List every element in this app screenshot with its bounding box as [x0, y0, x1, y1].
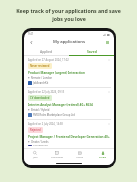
staticText: 9:41 [28, 32, 34, 36]
staticText: CV downloaded [30, 96, 50, 100]
button[interactable]: Applied [24, 47, 69, 55]
staticText: Profile [99, 156, 107, 159]
button[interactable]: Saved [69, 47, 114, 55]
staticText: Bristol / Hybrid [31, 108, 50, 112]
staticText: Applied on 22 July 2024, 09:15 [28, 90, 65, 94]
staticText: Project Manager / Frontend Developer Gen… [28, 135, 110, 139]
button[interactable]: Menu [103, 38, 111, 46]
staticText: GO EMPLOY [33, 145, 48, 146]
button[interactable]: Profile [91, 149, 114, 161]
staticText: Companies [51, 156, 64, 159]
staticText: Onsite / Leeds [31, 140, 49, 144]
button[interactable]: Advice [68, 149, 91, 161]
staticText: Interim Analyst Manager (retired) 40+ 86… [28, 103, 93, 107]
button[interactable]: Companies [46, 149, 68, 161]
staticText: Jobs [33, 156, 38, 159]
staticText: Never reviewed [30, 64, 50, 68]
staticText: Saved [87, 49, 97, 54]
staticText: Product Manager (urgent) Interaction [28, 71, 85, 75]
staticText: Keep track of your applications and save [16, 7, 121, 14]
button[interactable]: Jobs [24, 149, 46, 161]
button[interactable]: Back [27, 38, 35, 46]
staticText: Rejected [30, 128, 41, 132]
button[interactable]: Applied on 2 July 2024, 14:58 [24, 120, 114, 148]
staticText: Advice [76, 156, 84, 159]
staticText: JobSearchKit [33, 81, 49, 85]
staticText: PMO Roles Marketplace Group Ltd [33, 113, 75, 117]
staticText: Applied on 27 August 2024, 17:02 [28, 58, 69, 62]
staticText: Remote / London [31, 76, 53, 80]
staticText: My applications [53, 39, 86, 45]
staticText: jobs you love [52, 15, 86, 22]
staticText: Applied on 2 July 2024, 14:58 [28, 122, 63, 126]
button[interactable]: Applied on 27 August 2024, 17:02 [24, 56, 114, 87]
staticText: Applied [40, 49, 53, 54]
button[interactable]: Applied on 22 July 2024, 09:15 [24, 88, 114, 119]
